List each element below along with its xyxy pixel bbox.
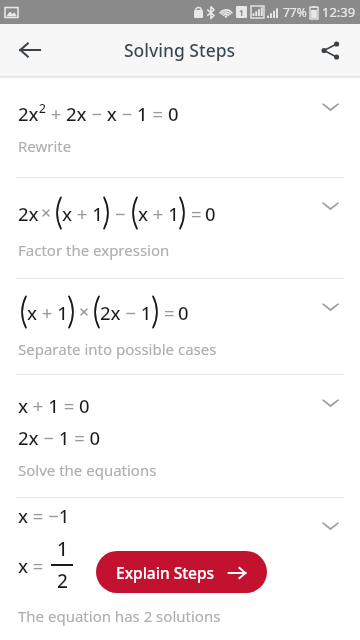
button[interactable]: x + 1 = 0 bbox=[0, 375, 360, 497]
button[interactable]: 2x bbox=[0, 178, 360, 278]
staticText: − bbox=[115, 201, 126, 226]
staticText: x + 1 bbox=[138, 201, 179, 226]
staticText: 0 bbox=[205, 201, 216, 226]
button[interactable]: 2x2 + 2x − x − 1 = 0 bbox=[0, 79, 360, 177]
button[interactable]: Explain Steps bbox=[96, 551, 267, 593]
staticText: x + 1 bbox=[62, 201, 103, 226]
staticText: = bbox=[191, 201, 202, 226]
staticText: = bbox=[164, 300, 175, 325]
staticText: x + 1 = 0 bbox=[18, 393, 90, 418]
button[interactable]: Expand step bbox=[314, 510, 346, 542]
button[interactable]: x = −1 bbox=[0, 498, 360, 630]
staticText: x = −1 bbox=[18, 503, 70, 528]
staticText: 1 bbox=[239, 7, 244, 18]
button[interactable]: x + 1 bbox=[0, 279, 360, 374]
button[interactable]: Expand step bbox=[314, 190, 346, 222]
staticText: Solve the equations bbox=[18, 460, 157, 480]
button[interactable]: Expand step bbox=[314, 291, 346, 323]
staticText: x = bbox=[18, 553, 49, 578]
staticText: The equation has 2 solutions bbox=[18, 606, 221, 626]
button[interactable]: Expand step bbox=[314, 91, 346, 123]
button[interactable]: Back bbox=[8, 28, 52, 72]
staticText: x + 1 bbox=[27, 300, 68, 325]
staticText: 2x − 1 = 0 bbox=[18, 425, 101, 450]
staticText: 2x bbox=[18, 201, 39, 226]
staticText: 12:39 bbox=[322, 3, 356, 21]
staticText: Solving Steps bbox=[124, 38, 236, 62]
staticText: 1 bbox=[57, 536, 68, 562]
staticText: Explain Steps bbox=[116, 562, 215, 583]
staticText: 77% bbox=[283, 4, 307, 20]
staticText: 2x − 1 bbox=[100, 300, 152, 325]
staticText: Factor the expression bbox=[18, 240, 170, 260]
button[interactable]: Expand step bbox=[314, 387, 346, 419]
staticText: Rewrite bbox=[18, 136, 72, 156]
staticText: Separate into possible cases bbox=[18, 339, 217, 359]
staticText: 0 bbox=[178, 300, 189, 325]
staticText: 2x2 + 2x − x − 1 = 0 bbox=[18, 100, 179, 126]
button[interactable]: Share bbox=[308, 28, 352, 72]
staticText: 2 bbox=[57, 568, 68, 594]
